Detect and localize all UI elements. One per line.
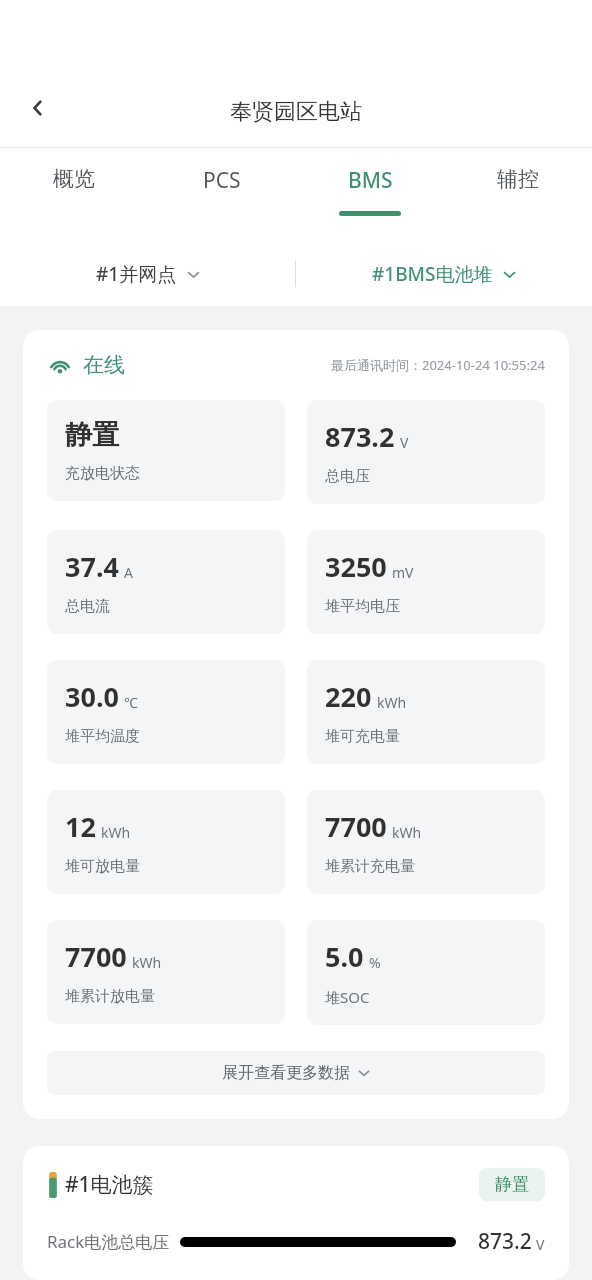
- button[interactable]: BMS: [296, 148, 444, 242]
- staticText: 展开查看更多数据: [222, 1063, 350, 1083]
- staticText: 5.0: [325, 938, 364, 975]
- button[interactable]: 3250: [307, 530, 545, 634]
- button[interactable]: #1并网点: [0, 242, 295, 306]
- staticText: ℃: [124, 693, 138, 712]
- staticText: Rack电池总电压: [47, 1230, 170, 1253]
- staticText: 充放电状态: [65, 464, 140, 483]
- staticText: 堆平均温度: [65, 727, 140, 746]
- staticText: 总电流: [65, 597, 110, 616]
- staticText: 静置: [495, 1174, 529, 1195]
- staticText: 873.2: [325, 418, 395, 455]
- staticText: kWh: [101, 823, 131, 842]
- staticText: 堆可充电量: [325, 727, 400, 746]
- button[interactable]: 30.0: [47, 660, 285, 764]
- staticText: 最后通讯时间：2024-10-24 10:55:24: [331, 356, 545, 374]
- staticText: 概览: [53, 166, 95, 192]
- button[interactable]: 展开查看更多数据: [47, 1051, 545, 1095]
- staticText: 37.4: [65, 548, 119, 585]
- staticText: V: [536, 1235, 545, 1254]
- staticText: 奉贤园区电站: [230, 98, 362, 126]
- staticText: BMS: [348, 166, 393, 195]
- staticText: #1电池簇: [65, 1170, 154, 1199]
- staticText: 12: [65, 808, 96, 845]
- staticText: #1并网点: [96, 261, 177, 287]
- staticText: kWh: [392, 823, 422, 842]
- staticText: kWh: [132, 953, 162, 972]
- staticText: 辅控: [497, 166, 539, 192]
- staticText: kWh: [377, 693, 407, 712]
- button[interactable]: Back: [14, 84, 62, 132]
- staticText: 静置: [65, 418, 119, 452]
- staticText: A: [124, 563, 133, 582]
- button[interactable]: 辅控: [444, 148, 592, 242]
- staticText: 7700: [325, 808, 387, 845]
- staticText: mV: [392, 563, 414, 582]
- button[interactable]: 7700: [47, 920, 285, 1024]
- button[interactable]: 12: [47, 790, 285, 894]
- staticText: 堆累计充电量: [325, 857, 415, 876]
- staticText: #1BMS电池堆: [372, 261, 493, 287]
- staticText: PCS: [203, 166, 241, 195]
- staticText: 220: [325, 678, 372, 715]
- button[interactable]: 5.0: [307, 920, 545, 1025]
- button[interactable]: #1BMS电池堆: [296, 242, 592, 306]
- staticText: 总电压: [325, 467, 370, 486]
- button[interactable]: 37.4: [47, 530, 285, 634]
- button[interactable]: 873.2: [307, 400, 545, 504]
- staticText: 堆累计放电量: [65, 987, 155, 1006]
- button[interactable]: 220: [307, 660, 545, 764]
- staticText: 7700: [65, 938, 127, 975]
- staticText: V: [400, 433, 409, 452]
- button[interactable]: 概览: [0, 148, 148, 242]
- staticText: 30.0: [65, 678, 119, 715]
- staticText: %: [369, 953, 381, 972]
- button[interactable]: 静置: [47, 400, 285, 501]
- button[interactable]: 7700: [307, 790, 545, 894]
- staticText: 873.2: [478, 1227, 532, 1256]
- staticText: 堆SOC: [325, 987, 370, 1007]
- button[interactable]: PCS: [148, 148, 296, 242]
- staticText: 在线: [83, 352, 125, 378]
- staticText: 3250: [325, 548, 387, 585]
- button[interactable]: 静置: [479, 1168, 545, 1201]
- staticText: 堆平均电压: [325, 597, 400, 616]
- staticText: 堆可放电量: [65, 857, 140, 876]
